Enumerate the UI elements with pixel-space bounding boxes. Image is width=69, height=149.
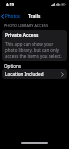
staticText: Photos	[5, 13, 21, 19]
staticText: 4:19	[6, 2, 14, 7]
staticText: PHOTO LIBRARY ACCESS	[4, 23, 49, 28]
staticText: Trails	[28, 13, 41, 20]
other: Open Location Included	[61, 72, 64, 77]
staticText: Private Access	[5, 32, 39, 39]
staticText: Options	[4, 63, 22, 69]
button[interactable]: Photos	[0, 12, 25, 20]
staticText: Location Included	[5, 71, 44, 77]
button[interactable]: Private Access	[2, 30, 67, 61]
staticText: This app can show your photo library, bu…	[5, 41, 63, 59]
button[interactable]: Location Included	[2, 69, 67, 79]
